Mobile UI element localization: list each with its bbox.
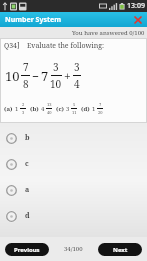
staticText: b xyxy=(25,133,30,143)
staticText: 2 xyxy=(22,102,25,107)
staticText: 7 xyxy=(99,102,102,107)
staticText: You have answered 0/100 xyxy=(72,29,145,37)
staticText: 1 xyxy=(92,105,96,113)
button[interactable]: c xyxy=(0,151,147,177)
staticText: (b) xyxy=(30,105,39,113)
staticText: Q34] xyxy=(4,41,20,51)
staticText: 4 xyxy=(74,77,80,91)
staticText: 13:09 xyxy=(127,1,145,11)
staticText: 13 xyxy=(47,102,52,107)
staticText: 3 xyxy=(66,105,70,113)
staticText: Next xyxy=(113,246,128,254)
staticText: a xyxy=(25,185,30,195)
staticText: (d) xyxy=(81,105,90,113)
staticText: 1 xyxy=(15,105,19,113)
button[interactable]: Previous question xyxy=(5,243,49,256)
staticText: 8 xyxy=(23,77,29,91)
staticText: 11 xyxy=(72,110,77,115)
button[interactable]: a xyxy=(0,177,147,203)
button[interactable]: Next question xyxy=(98,243,142,256)
staticText: Evaluate the following: xyxy=(27,41,104,51)
staticText: c xyxy=(25,159,29,169)
staticText: 40 xyxy=(47,110,52,115)
staticText: 7 xyxy=(41,67,49,85)
staticText: 10 xyxy=(5,67,20,85)
staticText: 7 xyxy=(23,60,29,74)
staticText: d xyxy=(25,211,30,221)
staticText: + xyxy=(64,68,71,84)
staticText: 3 xyxy=(22,110,25,115)
button[interactable]: b xyxy=(0,125,147,151)
button[interactable]: Close xyxy=(131,13,144,26)
staticText: 34/100 xyxy=(64,245,83,253)
staticText: 4 xyxy=(41,105,45,113)
staticText: − xyxy=(32,68,39,84)
staticText: (c) xyxy=(56,105,64,113)
staticText: 5 xyxy=(73,102,76,107)
staticText: 10 xyxy=(50,77,62,91)
staticText: 3 xyxy=(74,60,80,74)
staticText: Previous xyxy=(14,246,40,254)
staticText: 3 xyxy=(53,60,59,74)
staticText: Number System xyxy=(5,15,62,25)
staticText: (a) xyxy=(4,105,13,113)
button[interactable]: d xyxy=(0,203,147,229)
staticText: 20 xyxy=(98,110,103,115)
